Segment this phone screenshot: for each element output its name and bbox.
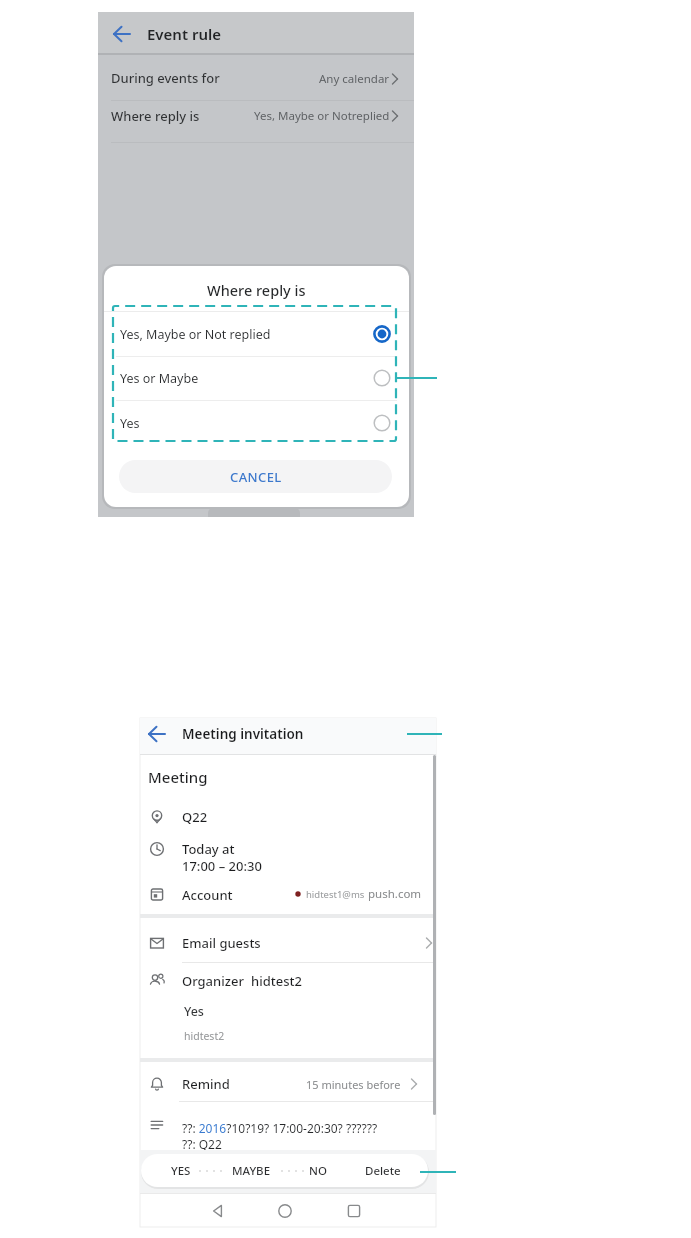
staticText: hidtest2 (184, 1029, 225, 1043)
staticText: Delete (365, 1163, 401, 1179)
button[interactable] (217, 1154, 297, 1187)
button[interactable] (140, 1066, 436, 1100)
staticText: Meeting (148, 767, 208, 787)
button[interactable] (257, 1196, 313, 1226)
staticText: Today at (182, 840, 235, 858)
staticText: Account (182, 886, 233, 904)
staticText: Where reply is (111, 107, 200, 125)
button[interactable] (353, 1154, 423, 1187)
staticText: Remind (182, 1075, 230, 1093)
button[interactable] (114, 314, 402, 356)
button[interactable] (301, 1154, 347, 1187)
staticText: Yes, Maybe or Notreplied (254, 108, 390, 124)
staticText: ??: 2016?10?19? 17:00-20:30? ?????? (182, 1120, 378, 1136)
staticText: push.com (368, 886, 422, 902)
staticText: Where reply is (207, 280, 306, 300)
staticText: CANCEL (230, 468, 282, 486)
button[interactable] (114, 401, 402, 445)
staticText: Meeting invitation (182, 725, 304, 743)
button[interactable] (114, 357, 402, 400)
button[interactable] (98, 54, 414, 100)
staticText: 15 minutes before (306, 1077, 401, 1092)
staticText: Email guests (182, 934, 261, 952)
staticText: Q22 (182, 808, 208, 826)
staticText: 17:00 – 20:30 (182, 857, 262, 875)
button[interactable]: CANCEL (119, 460, 392, 493)
button[interactable] (326, 1196, 382, 1226)
staticText: ??: Q22 (182, 1136, 222, 1152)
staticText: Organizer (182, 972, 244, 990)
staticText: During events for (111, 69, 220, 87)
staticText: MAYBE (232, 1163, 271, 1179)
staticText: Yes or Maybe (120, 370, 199, 387)
staticText: Event rule (147, 24, 222, 44)
staticText: YES (171, 1163, 191, 1179)
button[interactable] (98, 101, 414, 142)
staticText: Yes (120, 415, 140, 432)
staticText: Yes (184, 1003, 204, 1020)
button[interactable] (149, 1154, 209, 1187)
staticText: Yes, Maybe or Not replied (120, 326, 271, 343)
staticText: NO (309, 1163, 327, 1179)
button[interactable] (140, 924, 436, 962)
staticText: hidtest2 (251, 972, 302, 990)
staticText: hidtest1@ms (306, 888, 365, 901)
button[interactable] (190, 1196, 246, 1226)
staticText: Any calendar (319, 71, 390, 87)
